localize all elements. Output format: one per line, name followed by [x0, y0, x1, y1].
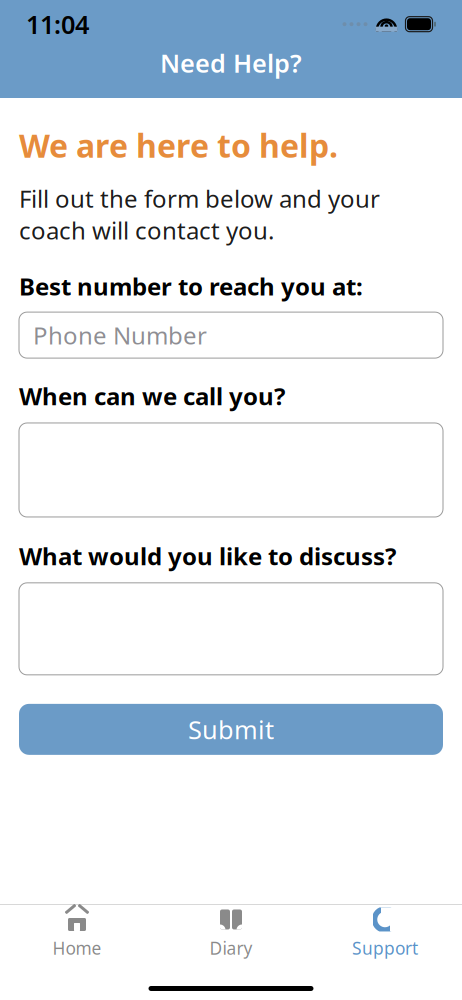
staticText: Diary: [209, 936, 252, 959]
staticText: 11:04: [26, 7, 89, 41]
staticText: Best number to reach you at:: [19, 270, 363, 302]
button[interactable]: Home: [0, 905, 154, 961]
staticText: When can we call you?: [19, 380, 285, 412]
button[interactable]: Phone Number: [19, 312, 443, 358]
staticText: Need Help?: [160, 46, 302, 80]
button[interactable]: Text field: [19, 583, 443, 675]
button[interactable]: Text field: [19, 423, 443, 517]
staticText: We are here to help.: [19, 124, 338, 166]
staticText: Home: [52, 936, 101, 959]
button[interactable]: Support: [308, 905, 462, 961]
button[interactable]: Diary: [154, 905, 308, 961]
staticText: Phone Number: [33, 319, 207, 351]
staticText: What would you like to discuss?: [19, 540, 396, 572]
button[interactable]: Submit: [19, 704, 443, 755]
staticText: Submit: [188, 712, 274, 746]
staticText: Fill out the form below and your coach w…: [19, 182, 380, 246]
staticText: Support: [352, 936, 418, 959]
